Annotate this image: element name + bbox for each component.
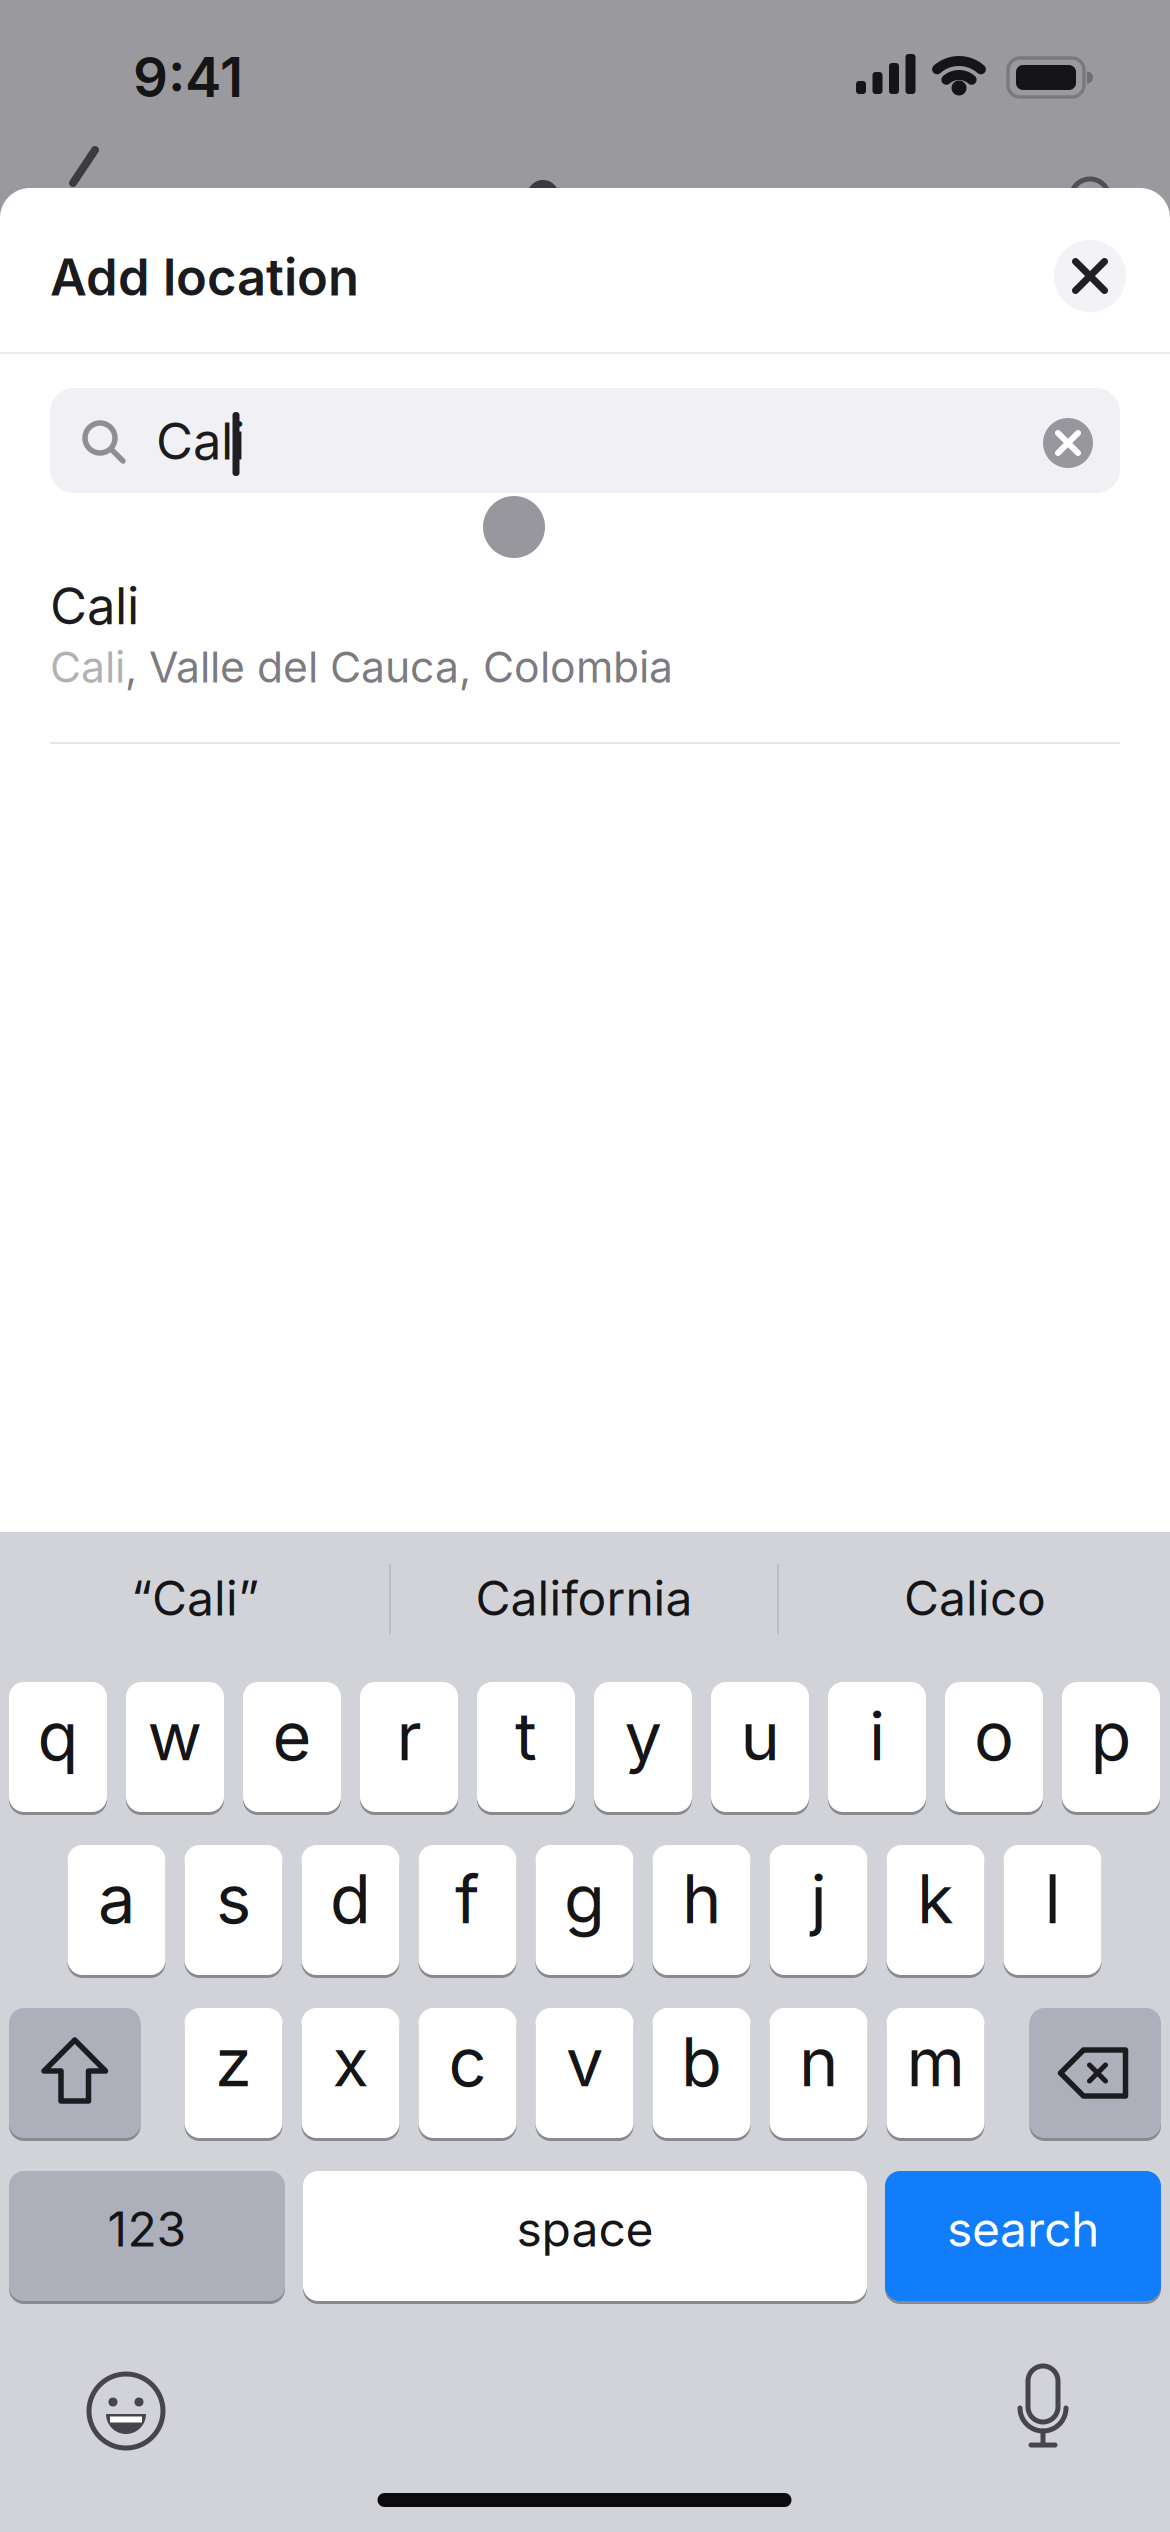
button[interactable]: Cali [50, 576, 1120, 692]
button[interactable]: y [594, 1682, 692, 1812]
button[interactable]: Clear text [1043, 418, 1093, 468]
button[interactable]: g [535, 1845, 633, 1975]
button[interactable]: c [418, 2008, 516, 2138]
button[interactable]: q [9, 1682, 107, 1812]
button[interactable]: n [769, 2008, 867, 2138]
staticText: g [564, 1860, 605, 1938]
staticText: c [448, 2023, 486, 2101]
staticText: d [330, 1860, 371, 1938]
staticText: 9:41 [133, 45, 243, 109]
button[interactable]: z [184, 2008, 282, 2138]
staticText: z [215, 2023, 252, 2101]
button[interactable]: 123 [9, 2171, 285, 2301]
staticText: Add location [50, 247, 359, 307]
staticText: l [1044, 1860, 1060, 1938]
button[interactable]: b [652, 2008, 750, 2138]
staticText: p [1090, 1697, 1131, 1775]
button[interactable]: h [652, 1845, 750, 1975]
button[interactable]: k [886, 1845, 984, 1975]
staticText: 123 [107, 2201, 186, 2257]
staticText: n [799, 2023, 838, 2101]
button[interactable]: r [360, 1682, 458, 1812]
button[interactable]: e [243, 1682, 341, 1812]
staticText: e [272, 1697, 311, 1775]
staticText: space [516, 2201, 653, 2257]
button[interactable]: w [126, 1682, 224, 1812]
staticText: m [906, 2023, 964, 2101]
button[interactable]: Close [1054, 240, 1126, 312]
staticText: y [624, 1697, 661, 1775]
button[interactable]: search [885, 2171, 1161, 2301]
button[interactable]: Calico [790, 1538, 1160, 1658]
staticText: i [869, 1697, 885, 1775]
staticText: t [515, 1697, 537, 1775]
button[interactable]: s [184, 1845, 282, 1975]
button[interactable]: t [477, 1682, 575, 1812]
button[interactable]: i [828, 1682, 926, 1812]
staticText: k [917, 1860, 954, 1938]
button[interactable]: Dictate [998, 2350, 1088, 2460]
button[interactable]: d [301, 1845, 399, 1975]
staticText: , Valle del Cauca, Colombia [125, 642, 673, 692]
button[interactable]: Search [50, 388, 1120, 493]
staticText: b [681, 2023, 722, 2101]
staticText: w [147, 1697, 202, 1775]
button[interactable]: a [67, 1845, 165, 1975]
staticText: f [455, 1860, 480, 1938]
staticText: Cali [50, 576, 139, 636]
staticText: Cali [156, 411, 245, 471]
staticText: v [566, 2023, 603, 2101]
button[interactable]: Delete [1029, 2008, 1161, 2138]
button[interactable]: m [886, 2008, 984, 2138]
staticText: Cali [50, 642, 125, 692]
button[interactable]: u [711, 1682, 809, 1812]
button[interactable]: v [535, 2008, 633, 2138]
button[interactable]: California [399, 1538, 769, 1658]
staticText: a [98, 1860, 135, 1938]
staticText: o [974, 1697, 1014, 1775]
staticText: Calico [904, 1570, 1046, 1626]
button[interactable]: o [945, 1682, 1043, 1812]
button[interactable]: p [1062, 1682, 1160, 1812]
button[interactable]: “Cali” [10, 1538, 380, 1658]
staticText: search [947, 2201, 1099, 2257]
staticText: u [740, 1697, 779, 1775]
staticText: r [396, 1697, 421, 1775]
staticText: “Cali” [131, 1570, 259, 1626]
staticText: x [332, 2023, 368, 2101]
button[interactable]: j [769, 1845, 867, 1975]
button[interactable]: l [1003, 1845, 1101, 1975]
button[interactable]: Shift [9, 2008, 140, 2138]
button[interactable]: x [301, 2008, 399, 2138]
staticText: s [216, 1860, 251, 1938]
button[interactable]: Emoji [81, 2366, 171, 2456]
staticText: q [37, 1697, 78, 1775]
staticText: California [475, 1570, 692, 1626]
button[interactable]: space [303, 2171, 867, 2301]
button[interactable]: f [418, 1845, 516, 1975]
staticText: h [682, 1860, 721, 1938]
staticText: j [810, 1860, 826, 1938]
